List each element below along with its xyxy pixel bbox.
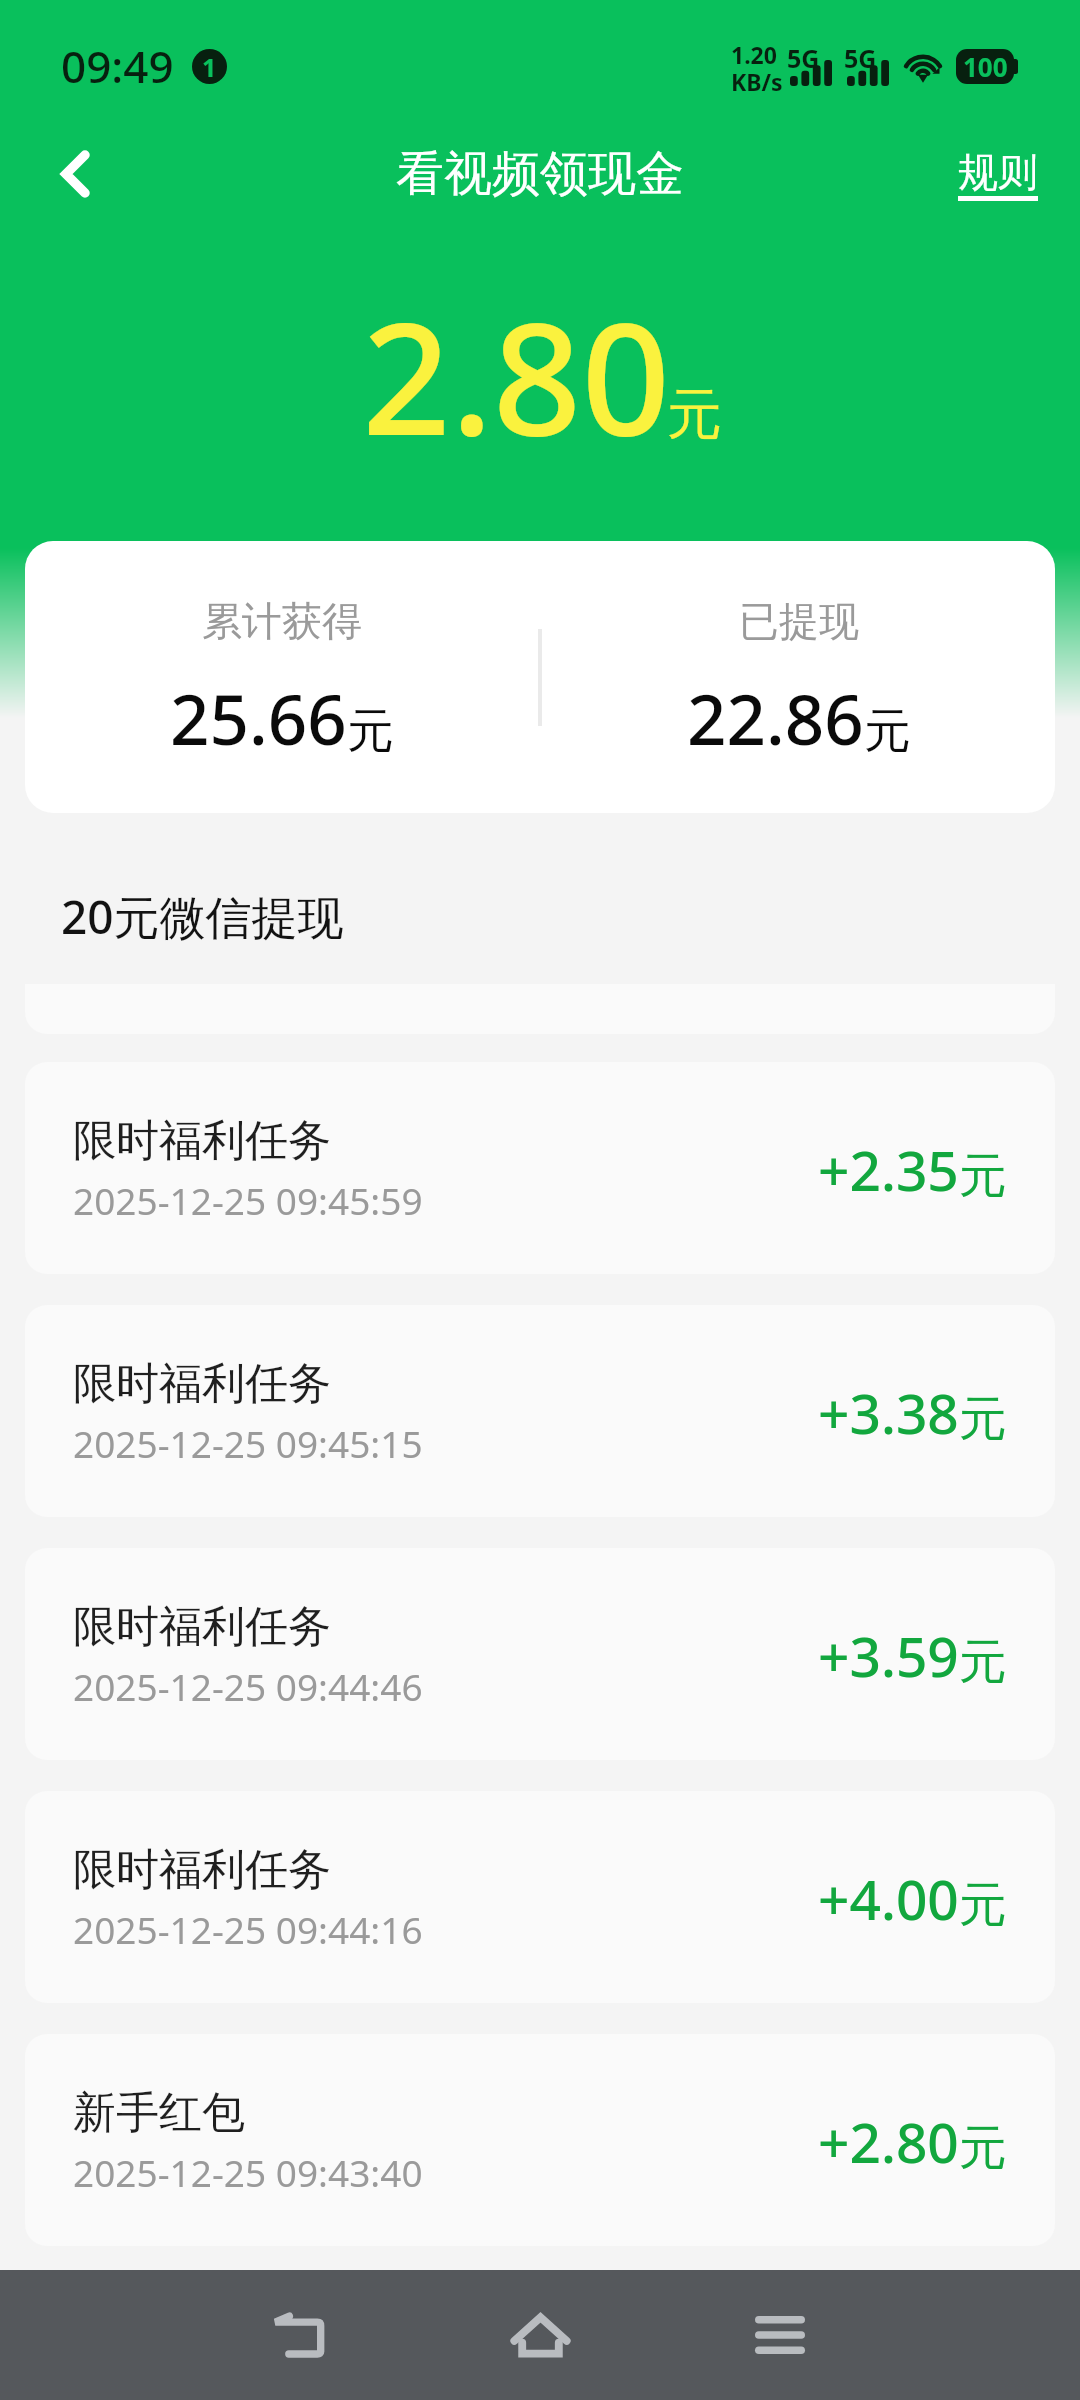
staticText: 元	[959, 2118, 1007, 2178]
staticText: 限时福利任务	[73, 1357, 331, 1411]
staticText: 元	[347, 702, 394, 761]
button[interactable]: Back	[238, 2275, 358, 2395]
button[interactable]: Back	[29, 128, 121, 220]
staticText: 已提现	[739, 596, 859, 646]
staticText: 22.86	[687, 671, 864, 765]
staticText: 元	[959, 1632, 1007, 1692]
staticText: 1.20	[731, 39, 777, 70]
staticText: 2025-12-25 09:45:59	[73, 1175, 423, 1225]
staticText: 20元微信提现	[61, 885, 344, 948]
staticText: 元	[959, 1389, 1007, 1449]
staticText: +3.38	[818, 1375, 959, 1450]
staticText: 限时福利任务	[73, 1600, 331, 1654]
staticText: 2025-12-25 09:44:16	[73, 1904, 423, 1954]
staticText: 元	[864, 702, 911, 761]
staticText: +2.80	[818, 2104, 959, 2179]
staticText: 2025-12-25 09:43:40	[73, 2147, 423, 2197]
staticText: 新手红包	[73, 2086, 245, 2140]
staticText: +3.59	[818, 1618, 959, 1693]
staticText: 5G	[844, 41, 877, 75]
staticText: 1	[202, 50, 217, 84]
staticText: 2025-12-25 09:45:15	[73, 1418, 423, 1468]
staticText: 2025-12-25 09:44:46	[73, 1661, 423, 1711]
staticText: 累计获得	[202, 596, 362, 646]
button[interactable]: 限时福利任务	[25, 1062, 1055, 1274]
staticText: 09:49	[61, 36, 174, 96]
button[interactable]: 规则	[952, 128, 1044, 224]
button[interactable]: 限时福利任务	[25, 1791, 1055, 2003]
staticText: 25.66	[170, 671, 347, 765]
staticText: 限时福利任务	[73, 1114, 331, 1168]
staticText: 元	[667, 380, 722, 449]
staticText: 元	[959, 1146, 1007, 1206]
staticText: 元	[959, 1875, 1007, 1935]
staticText: 5G	[787, 41, 820, 75]
button[interactable]: 新手红包	[25, 2034, 1055, 2246]
staticText: 规则	[958, 147, 1038, 197]
button[interactable]: Menu	[720, 2275, 840, 2395]
button[interactable]: 限时福利任务	[25, 1548, 1055, 1760]
staticText: 限时福利任务	[73, 1843, 331, 1897]
button[interactable]: 限时福利任务	[25, 1305, 1055, 1517]
staticText: +2.35	[818, 1132, 959, 1207]
staticText: 100	[963, 49, 1008, 84]
staticText: 看视频领现金	[396, 144, 684, 204]
button[interactable]: Home	[480, 2275, 600, 2395]
staticText: 2.80	[362, 269, 671, 439]
staticText: KB/s	[731, 66, 783, 97]
staticText: +4.00	[818, 1861, 959, 1936]
